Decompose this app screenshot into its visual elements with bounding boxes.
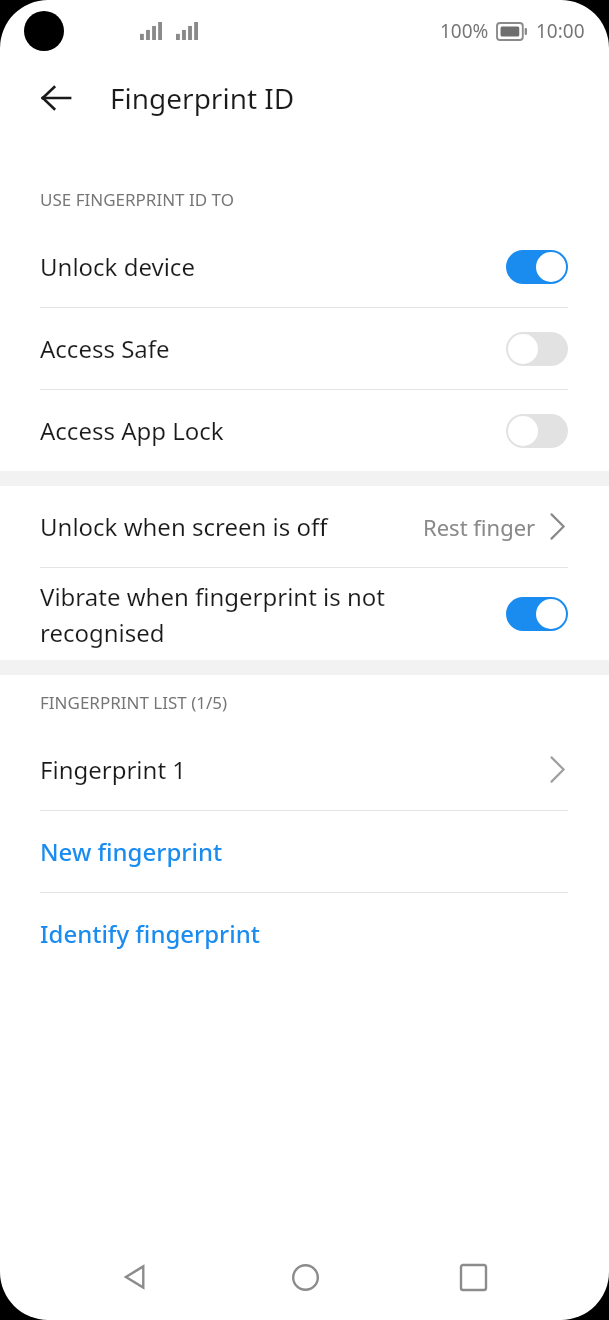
button[interactable]: Unlock when screen is off (0, 486, 609, 567)
staticText: USE FINGERPRINT ID TO (40, 188, 234, 211)
staticText: recognised (40, 616, 165, 649)
staticText: Rest finger (423, 512, 536, 542)
staticText: Fingerprint ID (110, 79, 295, 117)
button[interactable]: Switch on (506, 250, 568, 284)
staticText: Unlock device (40, 250, 506, 283)
staticText: Identify fingerprint (40, 917, 260, 950)
button[interactable]: Switch off (506, 414, 568, 448)
button[interactable]: Switch off (506, 332, 568, 366)
button[interactable]: Identify fingerprint (0, 893, 609, 974)
staticText: Fingerprint 1 (40, 753, 546, 786)
staticText: 100% (440, 18, 489, 44)
button[interactable]: Switch on (506, 597, 568, 631)
button[interactable]: Back (28, 70, 84, 126)
staticText: Unlock when screen is off (40, 510, 423, 543)
other: Open (546, 753, 568, 786)
staticText: FINGERPRINT LIST (1/5) (40, 691, 228, 714)
other: Open (546, 510, 568, 543)
button[interactable]: Recent apps (440, 1244, 506, 1310)
button[interactable]: Unlock device (0, 226, 609, 307)
staticText: New fingerprint (40, 835, 223, 868)
button[interactable]: Back (103, 1244, 169, 1310)
button[interactable]: Home (272, 1244, 338, 1310)
button[interactable]: New fingerprint (0, 811, 609, 892)
staticText: 10:00 (536, 18, 585, 44)
button[interactable]: Access Safe (0, 308, 609, 389)
staticText: Vibrate when fingerprint is not (40, 580, 386, 613)
button[interactable]: Vibrate when fingerprint is not (0, 568, 609, 660)
button[interactable]: Access App Lock (0, 390, 609, 471)
button[interactable]: Fingerprint 1 (0, 729, 609, 810)
staticText: Access App Lock (40, 414, 506, 447)
staticText: Access Safe (40, 332, 506, 365)
